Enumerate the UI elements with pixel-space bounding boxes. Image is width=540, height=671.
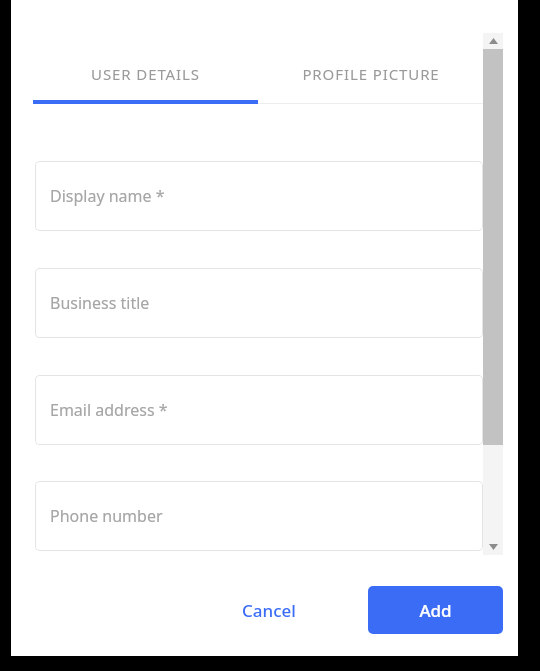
staticText: Display name * (50, 185, 165, 207)
button[interactable]: Display name * (35, 161, 483, 231)
staticText: Business title (50, 292, 150, 314)
staticText: PROFILE PICTURE (302, 64, 440, 84)
button[interactable]: USER DETAILS (33, 44, 258, 104)
staticText: Cancel (242, 599, 296, 622)
button[interactable]: PROFILE PICTURE (258, 44, 483, 104)
button[interactable]: Scroll down (483, 539, 503, 555)
staticText: Phone number (50, 505, 163, 527)
button[interactable]: Cancel (216, 586, 322, 634)
staticText: USER DETAILS (91, 64, 200, 84)
button[interactable]: Add (368, 586, 503, 634)
staticText: Add (419, 599, 452, 622)
button[interactable]: Email address * (35, 375, 483, 445)
button[interactable]: Business title (35, 268, 483, 338)
button[interactable]: Scroll up (483, 33, 503, 49)
staticText: Email address * (50, 399, 168, 421)
button[interactable]: Phone number (35, 481, 483, 551)
